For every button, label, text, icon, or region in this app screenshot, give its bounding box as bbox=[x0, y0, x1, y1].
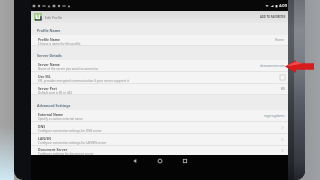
staticText: Default port is 80 or 443 bbox=[38, 91, 73, 95]
staticText: Configure connection settings for DNS se… bbox=[38, 129, 102, 133]
staticText: SSL provides encrypted communication if … bbox=[38, 79, 129, 83]
staticText: Choose a name for this profile bbox=[38, 42, 81, 46]
staticText: myprogdemo bbox=[264, 114, 285, 118]
button[interactable]: DNS bbox=[31, 122, 288, 134]
button[interactable]: ADD TO FAVORITES bbox=[259, 13, 287, 21]
button[interactable]: Home bbox=[154, 155, 165, 166]
staticText: 80 bbox=[281, 87, 285, 91]
staticText: Profile Name bbox=[38, 37, 61, 42]
button[interactable]: LAN/EN bbox=[31, 134, 288, 146]
staticText: Document Server bbox=[38, 147, 68, 152]
button[interactable]: Back bbox=[129, 155, 140, 166]
button[interactable]: Profile Name bbox=[31, 35, 288, 46]
staticText: Specify a custom external name bbox=[38, 117, 83, 121]
staticText: Configure connection settings for LAN/EN… bbox=[38, 141, 107, 145]
button[interactable]: Use SSL bbox=[31, 72, 288, 84]
staticText: Server Name bbox=[38, 62, 60, 67]
button[interactable]: Server Port bbox=[31, 84, 288, 95]
staticText: Use SSL bbox=[38, 74, 51, 79]
staticText: ADD TO FAVORITES bbox=[260, 15, 286, 19]
staticText: Name of the server you want to connect t… bbox=[38, 67, 99, 71]
staticText: Server Details bbox=[37, 53, 62, 58]
button[interactable]: Document Server bbox=[31, 146, 288, 155]
button[interactable]: Server Name bbox=[31, 60, 288, 72]
staticText: 4:09 bbox=[279, 3, 287, 8]
staticText: Home bbox=[275, 38, 285, 42]
button[interactable]: External Name bbox=[31, 110, 288, 122]
staticText: Edit Profile bbox=[45, 15, 63, 20]
other: Pointer bbox=[0, 0, 320, 180]
staticText: Profile Name bbox=[37, 28, 61, 33]
button[interactable]: Recents bbox=[179, 155, 190, 166]
staticText: Configure settings for document server bbox=[38, 152, 94, 156]
staticText: DNS bbox=[38, 124, 46, 129]
staticText: External Name bbox=[38, 112, 64, 117]
staticText: demoserver.com bbox=[260, 64, 285, 68]
staticText: Advanced Settings bbox=[37, 103, 71, 108]
staticText: LAN/EN bbox=[38, 136, 52, 141]
staticText: Server Port bbox=[38, 86, 57, 91]
